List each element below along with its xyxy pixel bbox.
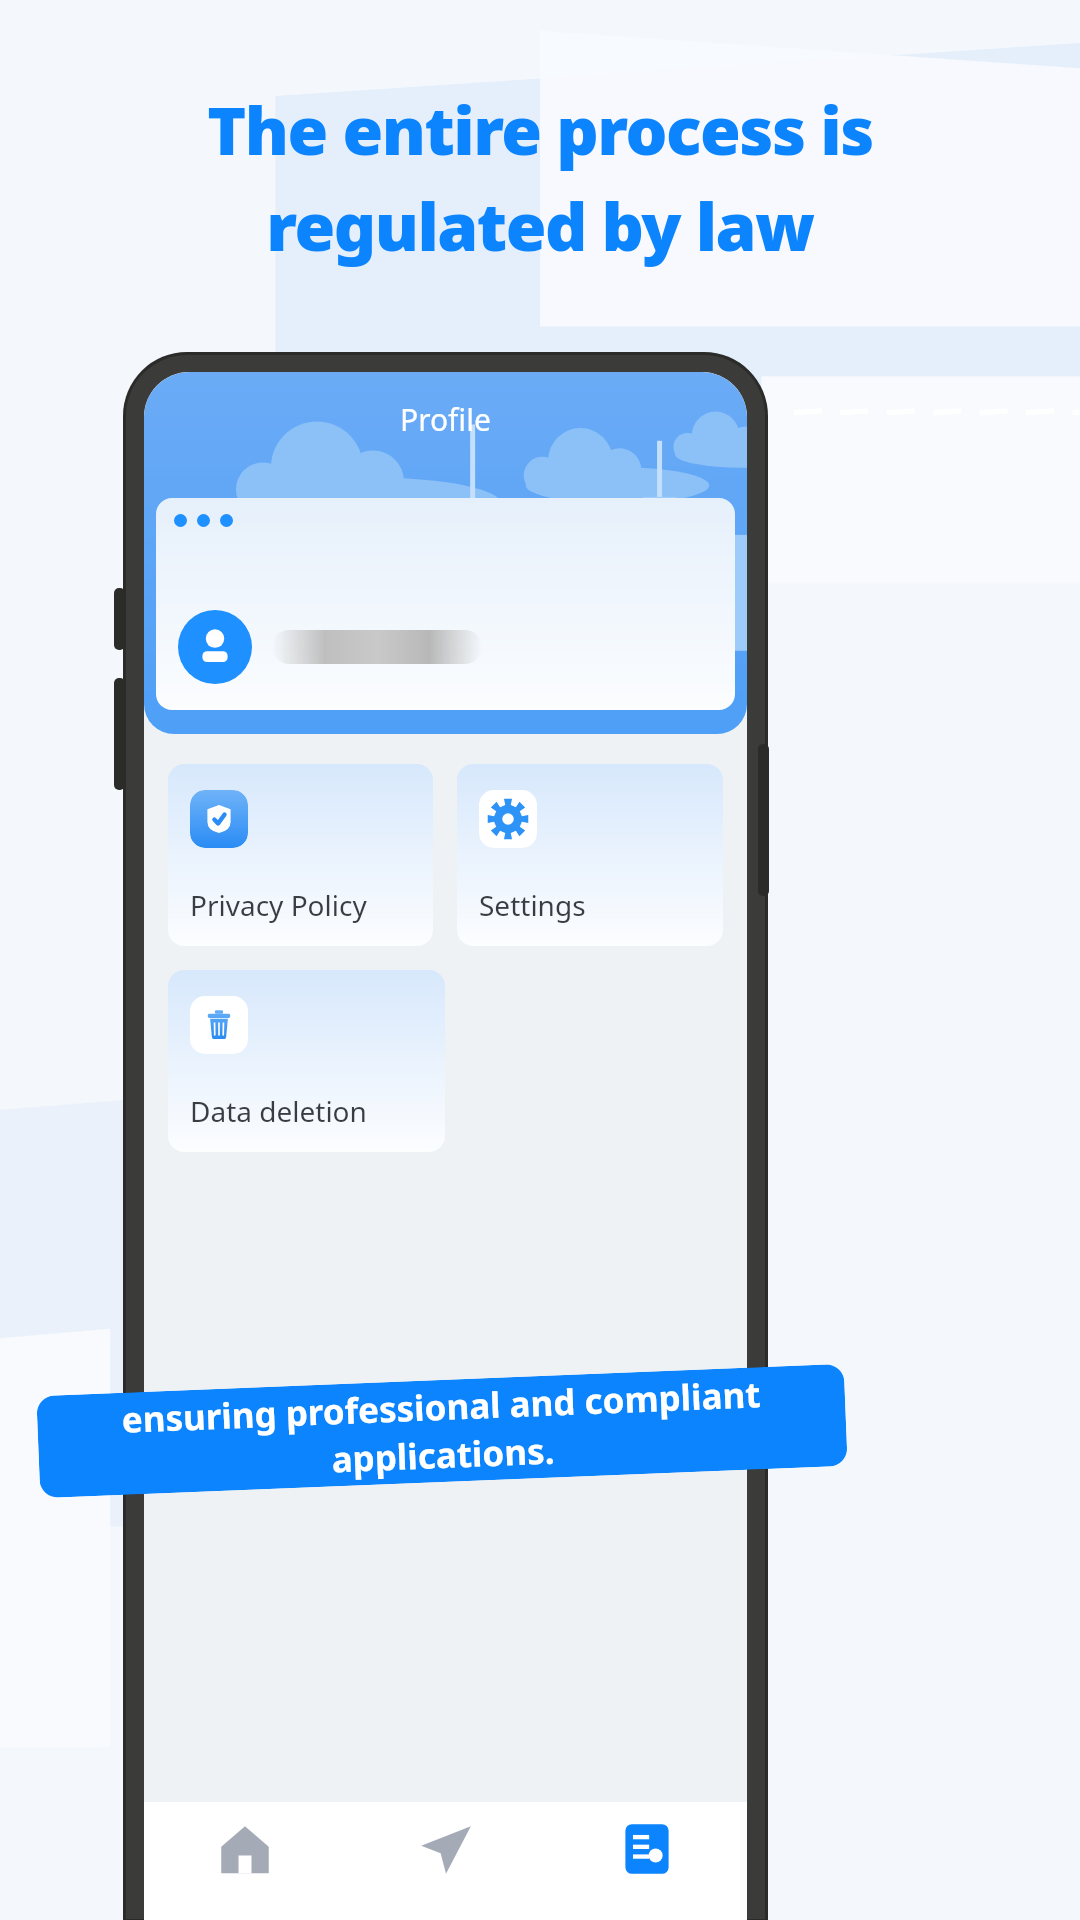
button[interactable]: Settings xyxy=(457,764,723,946)
button[interactable]: Data deletion xyxy=(168,970,445,1152)
staticText: regulated by law xyxy=(266,180,814,270)
button[interactable]: Home xyxy=(144,1802,345,1920)
button[interactable]: ensuring professional and compliant appl… xyxy=(36,1364,848,1498)
button[interactable]: Profile xyxy=(546,1802,747,1920)
staticText: Profile xyxy=(400,399,491,440)
staticText: Settings xyxy=(479,886,586,924)
staticText: The entire process is xyxy=(207,84,873,174)
button[interactable] xyxy=(156,498,735,710)
button[interactable]: Privacy Policy xyxy=(168,764,433,946)
staticText: Privacy Policy xyxy=(190,886,367,924)
staticText: ensuring professional and compliant appl… xyxy=(36,1367,848,1495)
button[interactable]: Messages xyxy=(345,1802,546,1920)
staticText: Data deletion xyxy=(190,1092,367,1130)
